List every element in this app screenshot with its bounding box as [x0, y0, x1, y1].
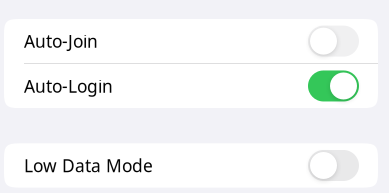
button[interactable]: Auto-Join [4, 19, 378, 63]
staticText: Low Data Mode [24, 154, 153, 177]
button[interactable]: Auto-Login [4, 64, 378, 108]
staticText: Auto-Login [24, 74, 113, 97]
button[interactable]: Low Data Mode [4, 143, 378, 187]
staticText: Auto-Join [24, 30, 98, 53]
